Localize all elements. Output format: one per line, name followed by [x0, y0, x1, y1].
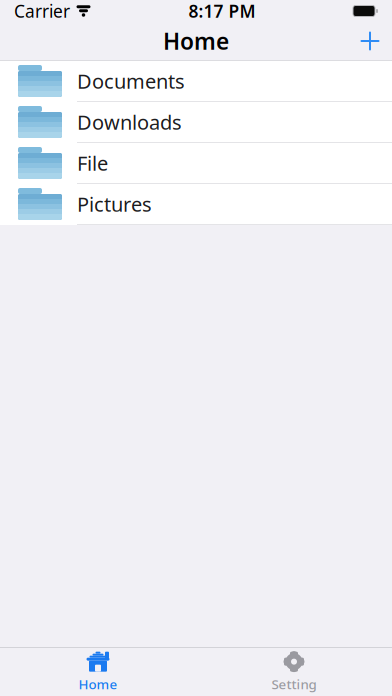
staticText: Downloads — [77, 109, 182, 135]
staticText: Pictures — [77, 191, 152, 217]
staticText: Carrier — [14, 0, 70, 22]
staticText: Documents — [77, 68, 185, 94]
button[interactable]: Downloads — [0, 102, 392, 143]
button[interactable]: Setting — [196, 648, 392, 696]
button[interactable]: Documents — [0, 61, 392, 102]
staticText: Home — [78, 675, 117, 693]
button[interactable]: Add — [348, 22, 392, 60]
button[interactable]: File — [0, 143, 392, 184]
button[interactable]: Home — [0, 648, 196, 696]
staticText: Setting — [271, 675, 316, 693]
button[interactable]: Pictures — [0, 184, 392, 225]
staticText: File — [77, 150, 108, 176]
staticText: 8:17 PM — [188, 0, 255, 22]
staticText: Home — [163, 26, 229, 56]
